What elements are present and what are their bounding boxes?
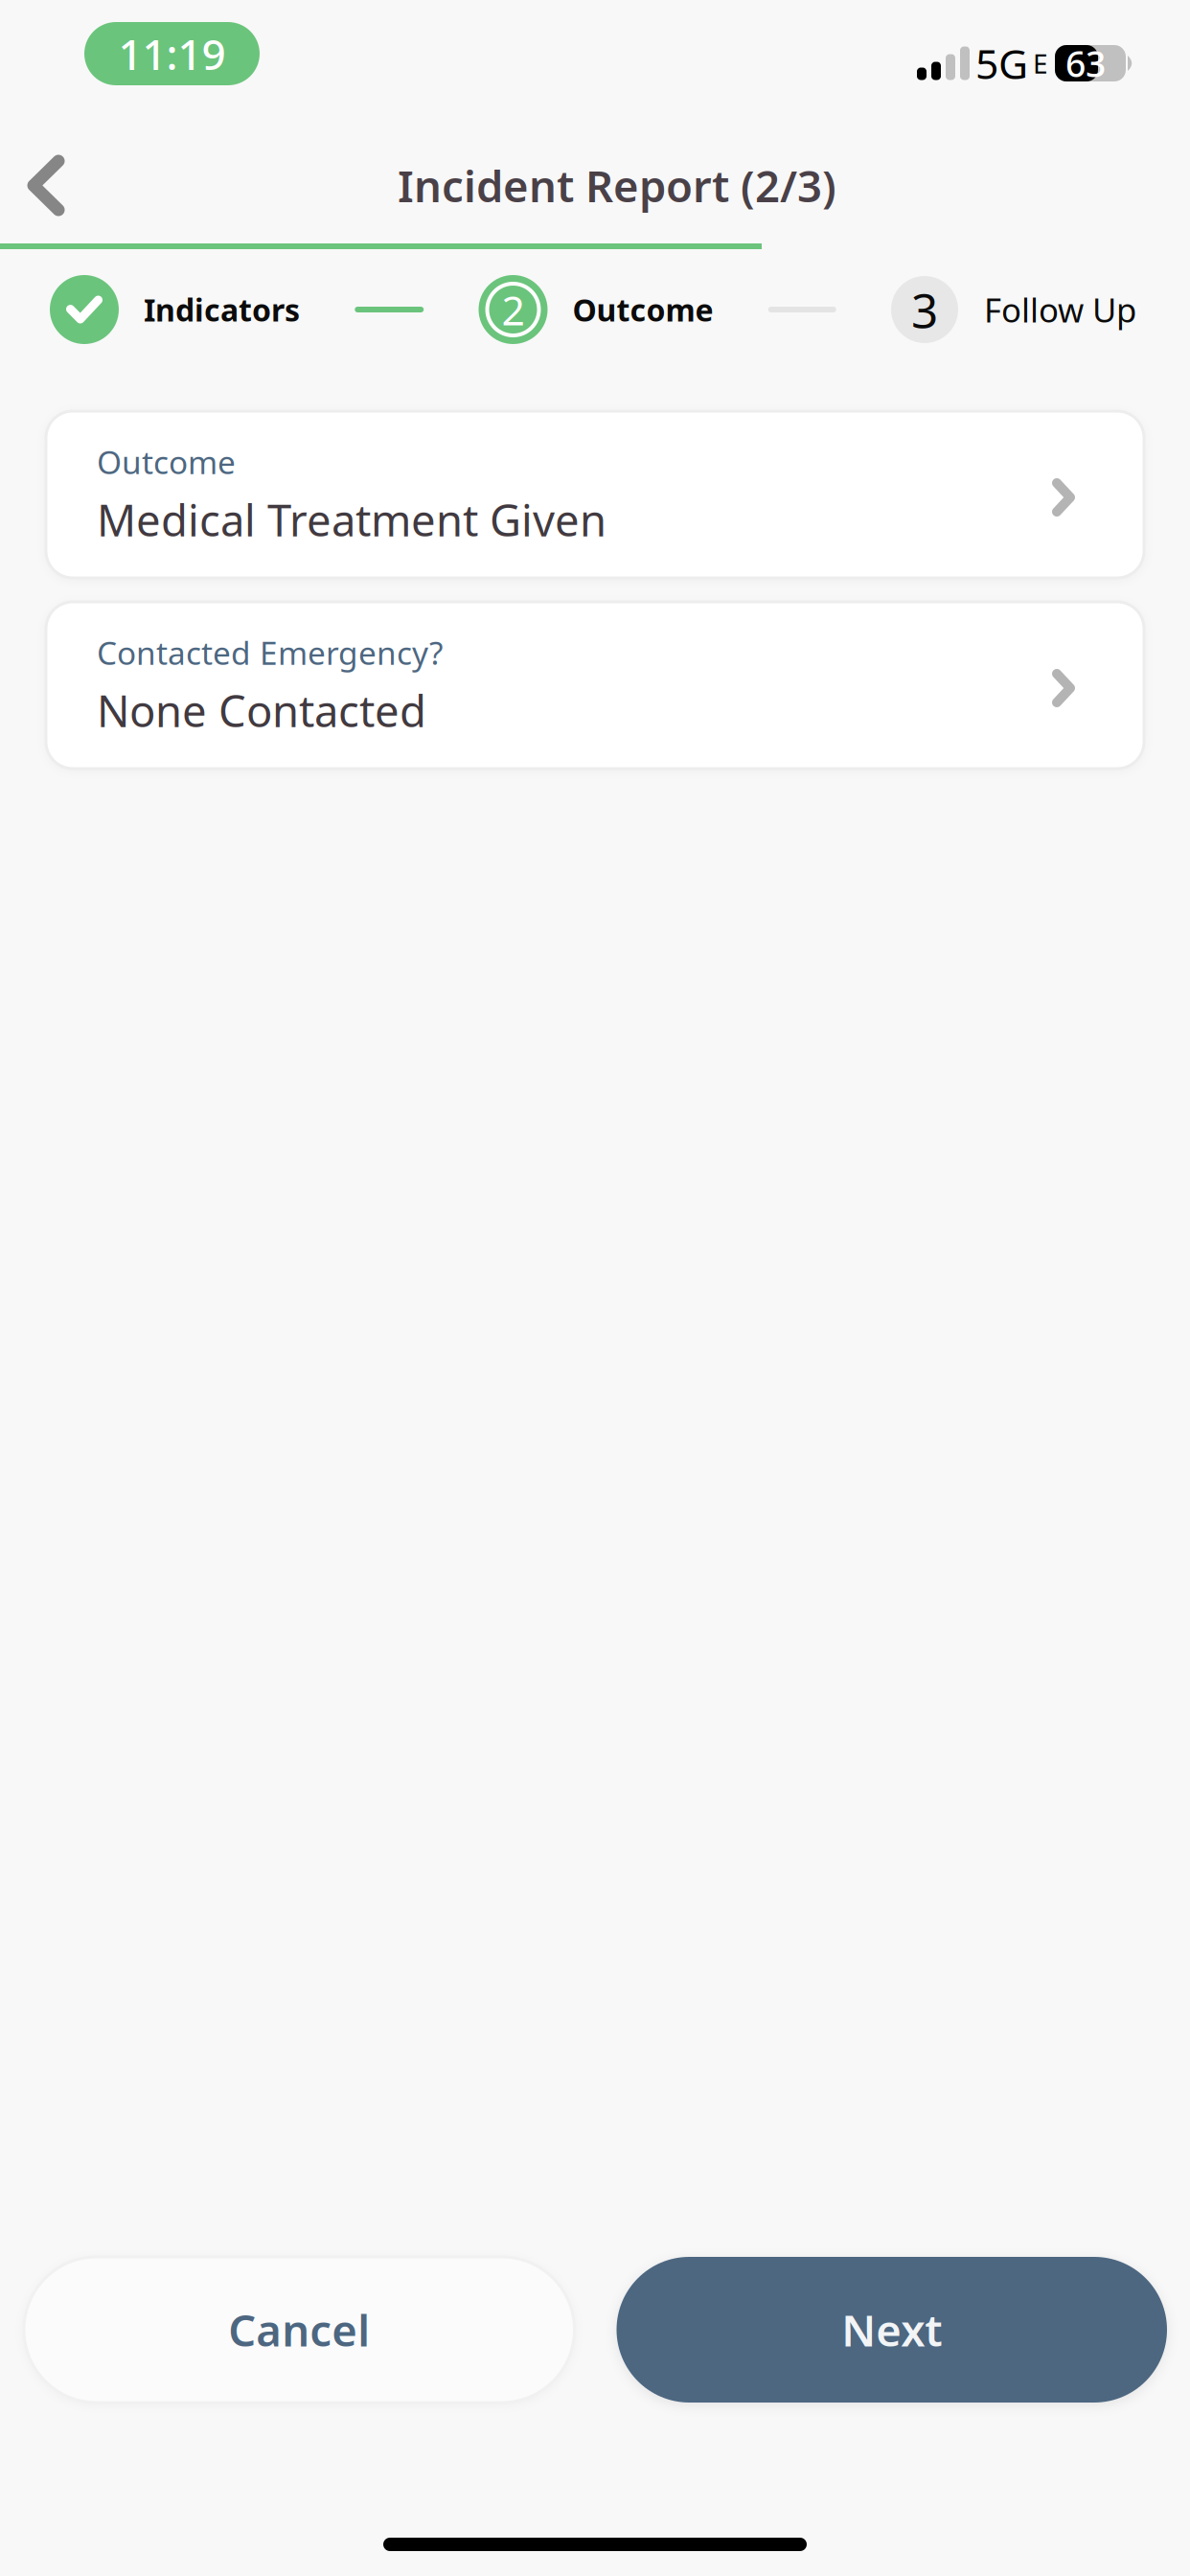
staticText: Outcome [572, 289, 713, 330]
staticText: Indicators [144, 289, 300, 330]
staticText: Next [841, 2301, 942, 2359]
button[interactable]: Outcome [46, 411, 1144, 578]
staticText: Cancel [228, 2301, 370, 2359]
staticText: Incident Report (2/3) [398, 157, 836, 214]
staticText: 5G [975, 36, 1028, 90]
button[interactable]: Next [617, 2257, 1167, 2403]
button[interactable]: Contacted Emergency? [46, 602, 1144, 769]
staticText: 2 [502, 282, 525, 337]
button[interactable]: Indicators [50, 275, 300, 344]
staticText: E [1033, 45, 1048, 81]
staticText: 11:19 [118, 26, 226, 82]
button[interactable]: Cancel [24, 2257, 574, 2403]
button[interactable]: Back [0, 142, 103, 225]
staticText: Medical Treatment Given [97, 491, 606, 548]
staticText: 63 [1065, 39, 1106, 87]
staticText: Outcome [97, 441, 236, 483]
staticText: Follow Up [984, 287, 1136, 332]
staticText: Contacted Emergency? [97, 631, 443, 674]
staticText: None Contacted [97, 681, 426, 739]
staticText: 3 [911, 278, 938, 341]
